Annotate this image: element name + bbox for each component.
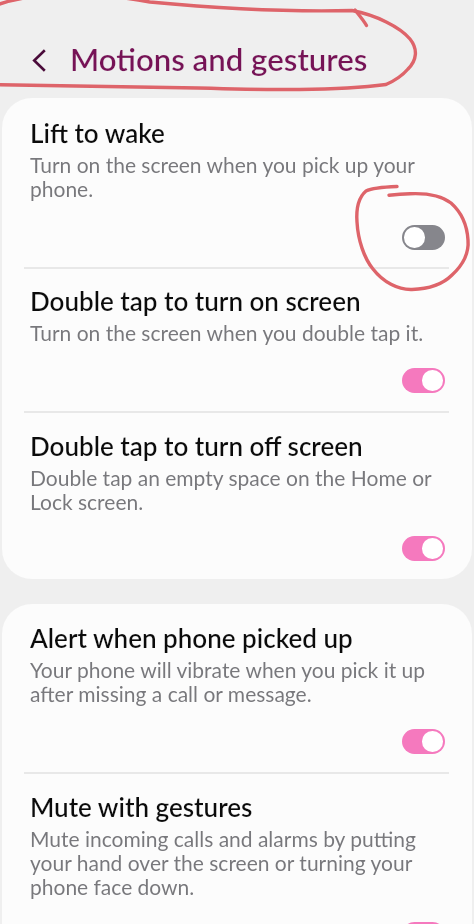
button[interactable] bbox=[0, 411, 474, 579]
staticText: Motions and gestures bbox=[70, 40, 368, 77]
button[interactable] bbox=[0, 98, 474, 267]
staticText: Turn on the screen when you pick up your bbox=[30, 152, 415, 177]
staticText: your hand over the screen or turning you… bbox=[30, 850, 413, 875]
staticText: Double tap to turn off screen bbox=[30, 430, 363, 461]
button[interactable]: Off bbox=[402, 225, 445, 250]
staticText: Alert when phone picked up bbox=[30, 622, 353, 653]
staticText: Double tap an empty space on the Home or bbox=[30, 465, 432, 490]
staticText: Lift to wake bbox=[30, 117, 165, 148]
staticText: Double tap to turn on screen bbox=[30, 285, 361, 316]
button[interactable] bbox=[0, 772, 474, 924]
button[interactable]: On bbox=[402, 536, 445, 561]
button[interactable] bbox=[0, 604, 474, 773]
button[interactable]: Navigate up bbox=[20, 41, 58, 79]
staticText: phone. bbox=[30, 176, 94, 201]
staticText: Mute incoming calls and alarms by puttin… bbox=[30, 826, 416, 851]
button[interactable]: On bbox=[402, 922, 445, 924]
staticText: phone face down. bbox=[30, 874, 195, 899]
button[interactable]: On bbox=[402, 729, 445, 754]
button[interactable] bbox=[0, 267, 474, 411]
staticText: Mute with gestures bbox=[30, 791, 253, 822]
staticText: Lock screen. bbox=[30, 489, 144, 514]
staticText: Turn on the screen when you double tap i… bbox=[30, 320, 424, 345]
button[interactable]: On bbox=[402, 368, 445, 393]
staticText: after missing a call or message. bbox=[30, 681, 312, 706]
staticText: Your phone will vibrate when you pick it… bbox=[30, 657, 426, 682]
